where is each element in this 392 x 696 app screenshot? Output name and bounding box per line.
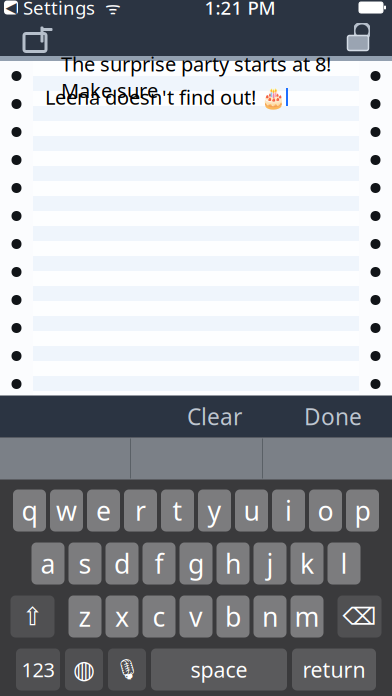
staticText: 123 xyxy=(21,656,54,683)
staticText: ⇧ xyxy=(22,602,43,631)
button[interactable]: b xyxy=(216,595,249,637)
staticText: b xyxy=(225,599,241,634)
button[interactable]: u xyxy=(235,489,268,531)
staticText: Settings xyxy=(18,0,95,20)
button[interactable] xyxy=(263,437,392,479)
button[interactable]: n xyxy=(253,595,286,637)
staticText: j xyxy=(266,546,273,581)
staticText: z xyxy=(78,599,91,634)
staticText: p xyxy=(354,493,370,528)
staticText: x xyxy=(115,599,129,634)
staticText: Done xyxy=(304,401,362,431)
staticText: Clear xyxy=(187,401,242,431)
button[interactable]: Next keyboard xyxy=(65,648,103,690)
button[interactable]: c xyxy=(142,595,175,637)
button[interactable]: p xyxy=(346,489,379,531)
staticText: r xyxy=(135,493,146,528)
staticText: q xyxy=(21,493,37,528)
button[interactable]: m xyxy=(290,595,323,637)
staticText: d xyxy=(114,546,130,581)
staticText: Leena doesn't find out! 🎂 xyxy=(45,84,286,110)
button[interactable]: Clear xyxy=(173,393,256,439)
staticText: h xyxy=(225,546,241,581)
button[interactable]: t xyxy=(161,489,194,531)
staticText: s xyxy=(78,546,91,581)
button[interactable]: l xyxy=(327,542,360,584)
button[interactable]: k xyxy=(290,542,323,584)
staticText: t xyxy=(172,493,182,528)
button[interactable]: r xyxy=(124,489,157,531)
button[interactable]: 123 xyxy=(16,648,60,690)
staticText: l xyxy=(340,546,347,581)
staticText: ⌫ xyxy=(342,603,376,630)
staticText: v xyxy=(189,599,203,634)
staticText: ◀ xyxy=(5,0,16,16)
button[interactable]: Done xyxy=(290,393,376,439)
button[interactable]: o xyxy=(309,489,342,531)
staticText: f xyxy=(154,546,163,581)
button[interactable]: e xyxy=(87,489,120,531)
button[interactable]: Lock note xyxy=(334,24,382,52)
button[interactable]: Delete xyxy=(337,595,381,637)
button[interactable]: s xyxy=(68,542,101,584)
button[interactable]: x xyxy=(105,595,138,637)
staticText: ᯤ xyxy=(95,0,121,19)
button[interactable]: w xyxy=(50,489,83,531)
button[interactable]: z xyxy=(68,595,101,637)
button[interactable]: h xyxy=(216,542,249,584)
button[interactable]: y xyxy=(198,489,231,531)
button[interactable]: space xyxy=(151,648,287,690)
button[interactable]: d xyxy=(105,542,138,584)
button[interactable]: a xyxy=(31,542,64,584)
staticText: a xyxy=(40,546,55,581)
staticText: y xyxy=(207,493,221,528)
staticText: i xyxy=(285,493,292,528)
button[interactable]: Shift xyxy=(10,595,54,637)
staticText: m xyxy=(294,599,319,634)
staticText: e xyxy=(96,493,111,528)
button[interactable]: j xyxy=(253,542,286,584)
staticText: w xyxy=(56,493,77,528)
button[interactable]: g xyxy=(179,542,212,584)
button[interactable] xyxy=(0,437,130,479)
button[interactable]: i xyxy=(272,489,305,531)
staticText: k xyxy=(300,546,314,581)
staticText: u xyxy=(243,493,259,528)
button[interactable]: q xyxy=(13,489,46,531)
staticText: n xyxy=(262,599,278,634)
staticText: space xyxy=(190,655,247,684)
button[interactable] xyxy=(131,437,262,479)
button[interactable]: Share xyxy=(10,22,60,54)
button[interactable]: f xyxy=(142,542,175,584)
staticText: g xyxy=(188,546,204,581)
button[interactable]: v xyxy=(179,595,212,637)
staticText: 🎙 xyxy=(114,658,139,681)
staticText: 1:21 PM xyxy=(204,0,275,20)
button[interactable]: return xyxy=(292,648,376,690)
staticText: The surprise party starts at 8! Make sur… xyxy=(61,50,331,103)
button[interactable]: Dictation xyxy=(108,648,146,690)
staticText: return xyxy=(302,655,365,684)
staticText: ◍ xyxy=(73,655,95,684)
staticText: o xyxy=(317,493,333,528)
staticText: c xyxy=(152,599,165,634)
